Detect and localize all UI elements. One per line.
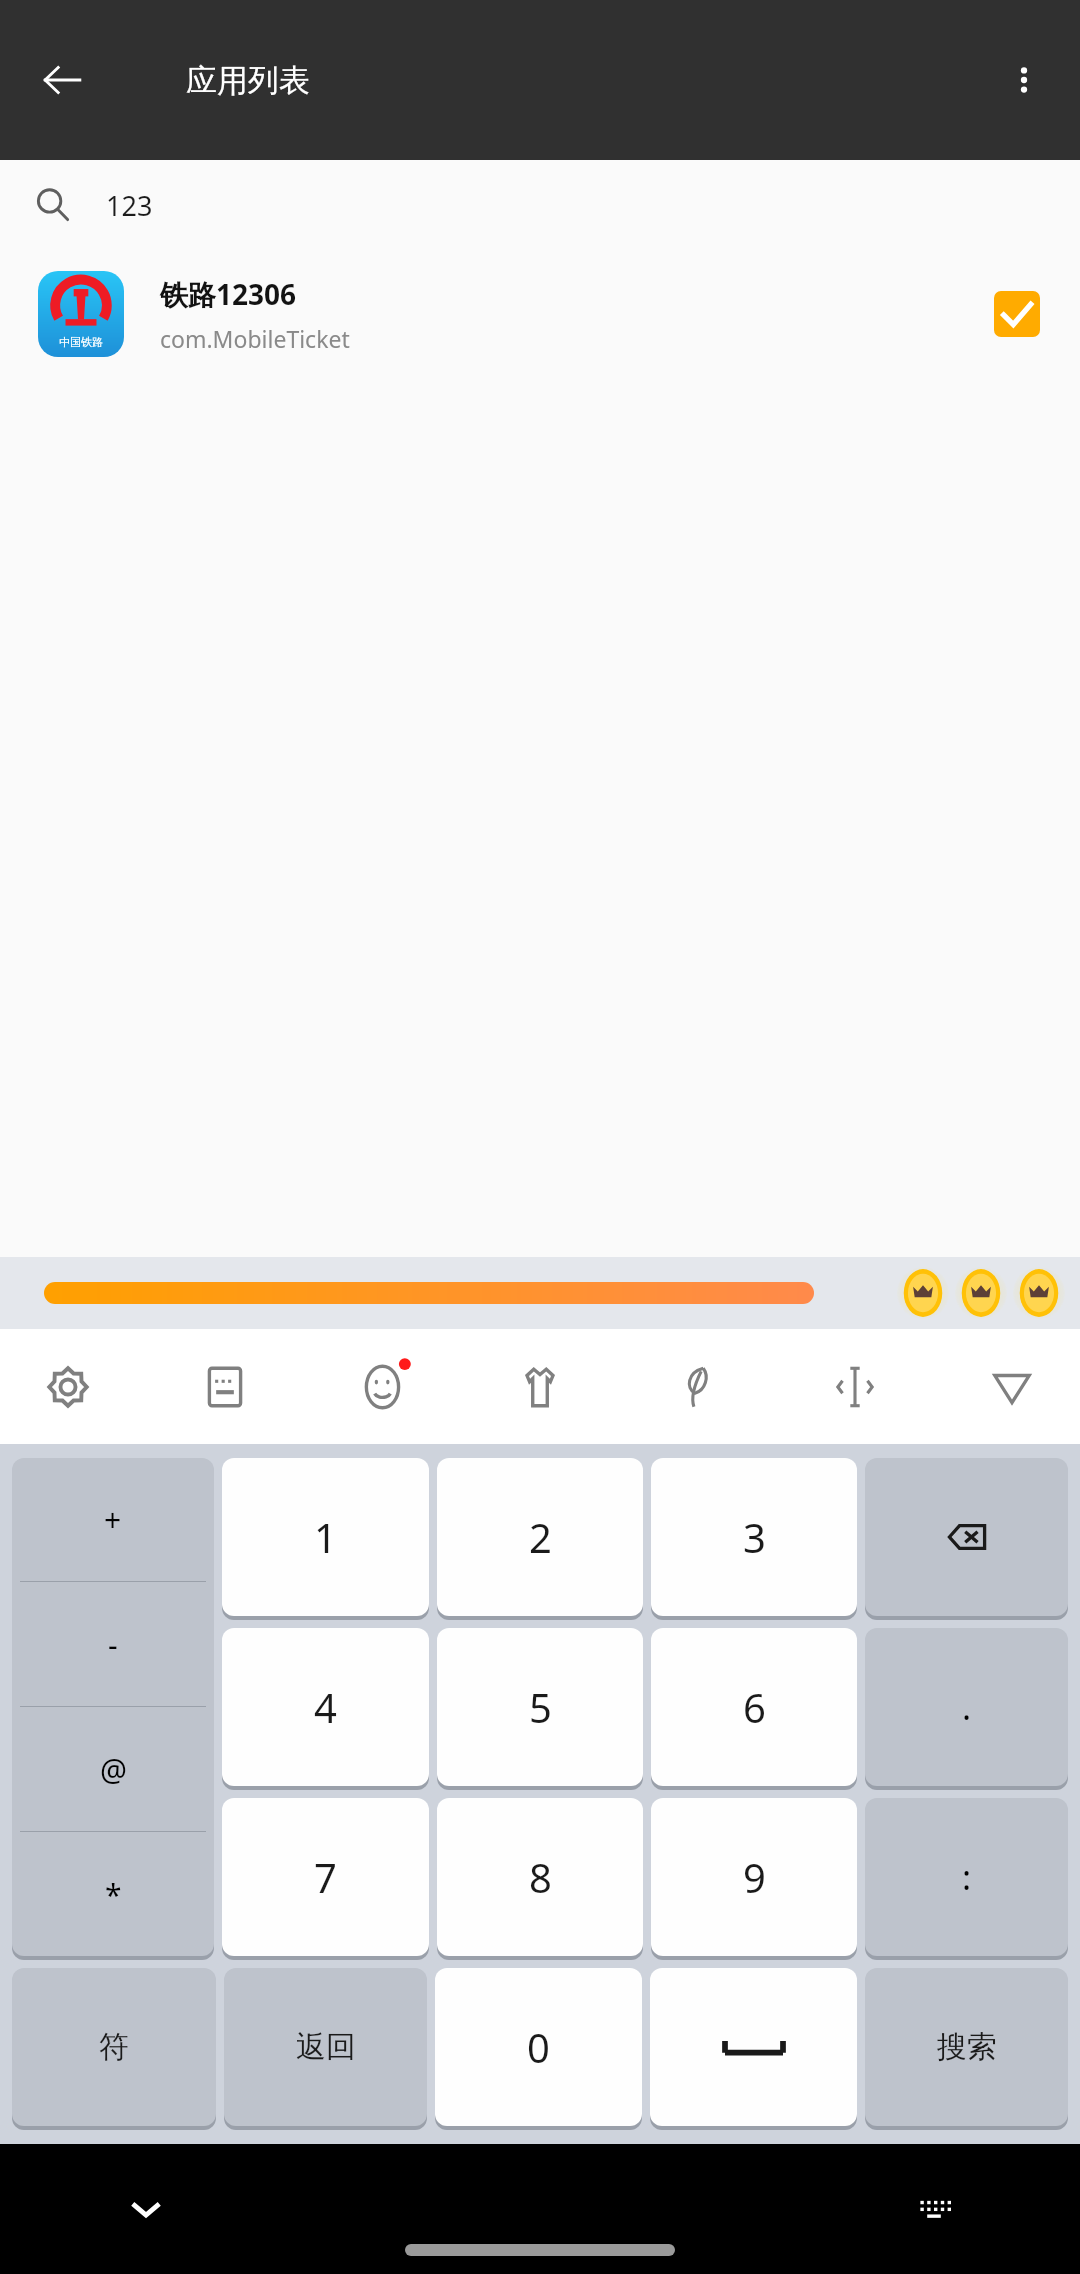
button[interactable]: Ad banner — [44, 1282, 814, 1304]
button[interactable]: Themes — [488, 1335, 592, 1439]
button[interactable]: 7 — [222, 1798, 429, 1956]
button[interactable]: Keyboard layout — [173, 1335, 277, 1439]
button[interactable]: Selected — [972, 269, 1062, 359]
button[interactable]: Emoji — [331, 1335, 435, 1439]
staticText: 0 — [527, 2020, 550, 2074]
staticText: . — [962, 1684, 972, 1730]
button[interactable]: Backspace — [865, 1458, 1068, 1616]
staticText: 1 — [314, 1510, 337, 1564]
button[interactable]: Coin — [894, 1264, 952, 1322]
staticText: + — [104, 1499, 122, 1540]
staticText: 应用列表 — [186, 61, 310, 100]
staticText: 7 — [314, 1850, 337, 1904]
button[interactable]: 5 — [437, 1628, 643, 1786]
button[interactable]: . — [865, 1628, 1068, 1786]
staticText: 9 — [743, 1850, 766, 1904]
staticText: 4 — [314, 1680, 337, 1734]
button[interactable]: Back — [26, 44, 98, 116]
button[interactable]: More options — [988, 44, 1060, 116]
button[interactable]: Handwriting — [645, 1335, 749, 1439]
staticText: 5 — [529, 1680, 552, 1734]
staticText: 中国铁路 — [59, 335, 103, 349]
button[interactable]: Switch keyboard — [898, 2173, 970, 2245]
staticText: 返回 — [296, 2028, 356, 2066]
button[interactable]: Space — [650, 1968, 857, 2126]
staticText: 123 — [106, 187, 153, 224]
button[interactable]: + — [12, 1458, 214, 1956]
button[interactable]: Cursor — [803, 1335, 907, 1439]
button[interactable]: 123 — [0, 160, 1080, 250]
other: Space — [650, 1968, 857, 2126]
staticText: 符 — [99, 2028, 129, 2066]
button[interactable]: 0 — [435, 1968, 642, 2126]
button[interactable]: 符 — [12, 1968, 216, 2126]
staticText: * — [105, 1874, 122, 1915]
staticText: @ — [100, 1749, 127, 1790]
staticText: 6 — [743, 1680, 766, 1734]
button[interactable]: 搜索 — [865, 1968, 1068, 2126]
staticText: 铁路12306 — [160, 275, 297, 313]
button[interactable]: 返回 — [224, 1968, 427, 2126]
button[interactable]: Hide keyboard — [960, 1335, 1064, 1439]
button[interactable]: 9 — [651, 1798, 857, 1956]
button[interactable]: Hide keyboard — [110, 2173, 182, 2245]
staticText: 搜索 — [937, 2028, 997, 2066]
staticText: 3 — [743, 1510, 766, 1564]
staticText: com.MobileTicket — [160, 323, 350, 354]
button[interactable]: 8 — [437, 1798, 643, 1956]
button[interactable]: 4 — [222, 1628, 429, 1786]
other: Backspace — [865, 1458, 1068, 1616]
staticText: 2 — [529, 1510, 552, 1564]
button[interactable]: 6 — [651, 1628, 857, 1786]
button[interactable]: 2 — [437, 1458, 643, 1616]
button[interactable]: 3 — [651, 1458, 857, 1616]
button[interactable]: Settings — [16, 1335, 120, 1439]
button[interactable]: : — [865, 1798, 1068, 1956]
button[interactable]: Coin — [1010, 1264, 1068, 1322]
button[interactable]: Coin — [952, 1264, 1010, 1322]
staticText: - — [108, 1624, 118, 1665]
button[interactable]: 中国铁路 — [0, 250, 1080, 378]
button[interactable]: 1 — [222, 1458, 429, 1616]
staticText: 8 — [529, 1850, 552, 1904]
staticText: : — [962, 1854, 972, 1900]
